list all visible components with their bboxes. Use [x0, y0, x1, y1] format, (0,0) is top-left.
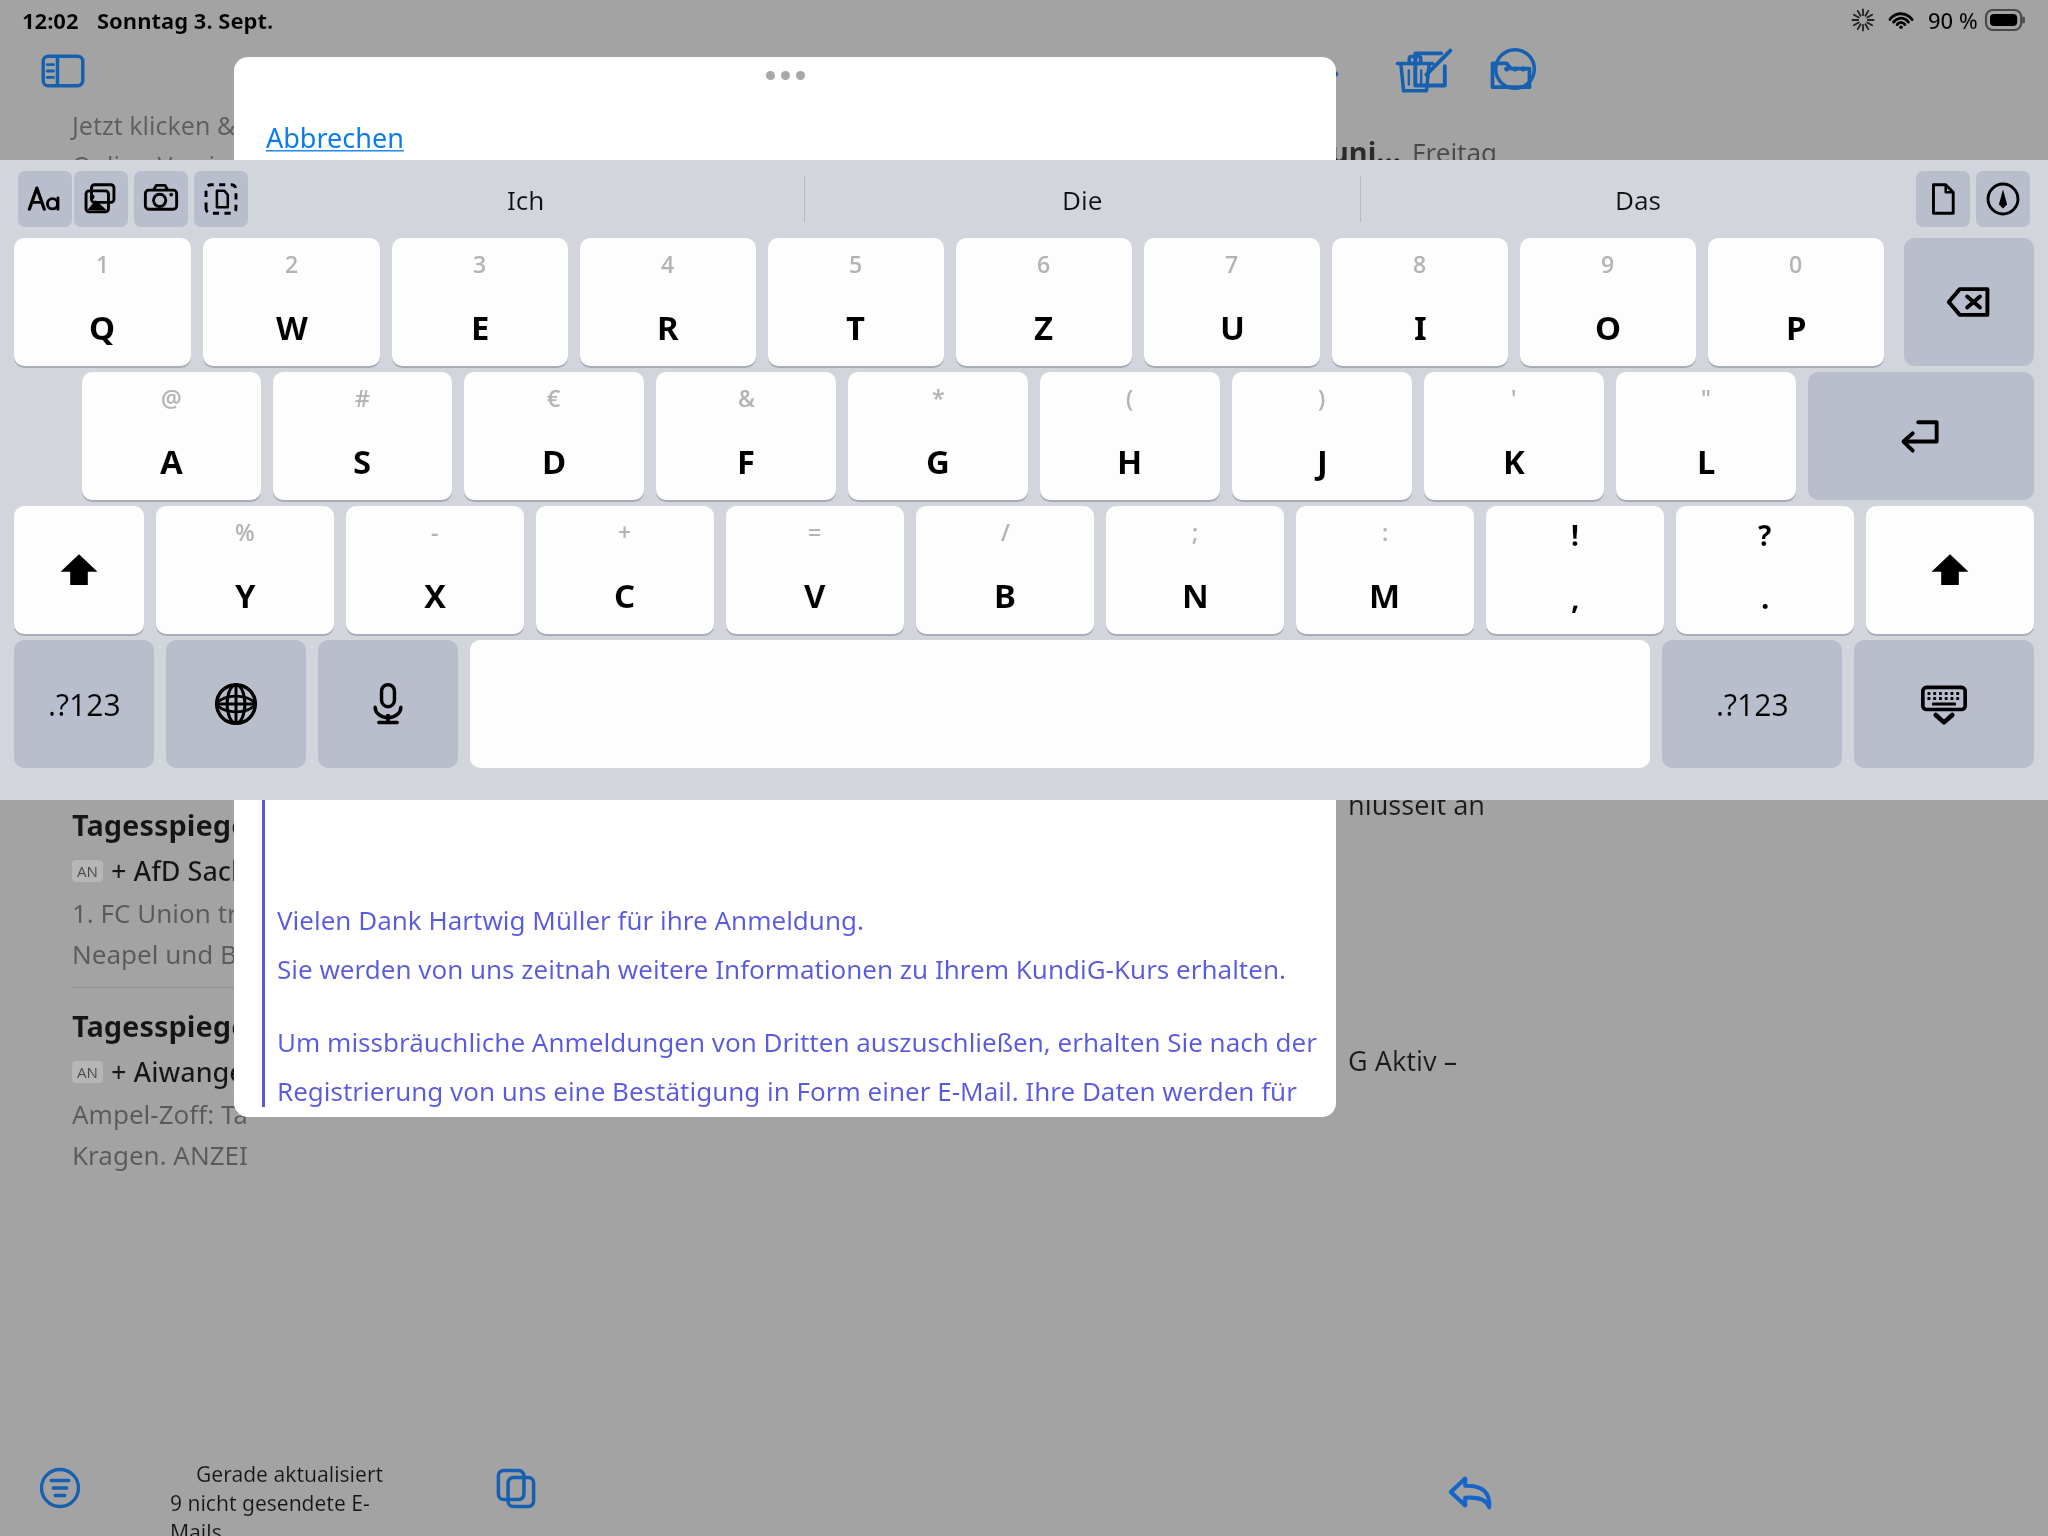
staticText: B: [994, 573, 1016, 618]
button[interactable]: 1: [14, 238, 191, 366]
button[interactable]: Aa: [18, 171, 72, 227]
staticText: hlüsselt an: [1348, 786, 1485, 823]
button[interactable]: 0: [1708, 238, 1884, 366]
staticText: 9: [1601, 248, 1615, 279]
button[interactable]: Das: [1361, 160, 1916, 238]
button[interactable]: Antworten: [1105, 52, 1149, 96]
button[interactable]: Neue E-Mail: [1408, 46, 1454, 92]
button[interactable]: Filter: [38, 1466, 82, 1510]
button[interactable]: 4: [580, 238, 756, 366]
button[interactable]: Weiterleiten: [1297, 52, 1341, 96]
button[interactable]: ': [1424, 372, 1604, 500]
button[interactable]: Anhang: [1916, 171, 1970, 227]
staticText: AN: [77, 861, 98, 881]
button[interactable]: Seitenleiste: [40, 48, 86, 94]
staticText: C: [614, 573, 636, 618]
button[interactable]: *: [848, 372, 1028, 500]
button[interactable]: 2: [203, 238, 380, 366]
button[interactable]: 3: [392, 238, 568, 366]
button[interactable]: .?123: [1662, 640, 1842, 768]
staticText: Medizinischen Hochschule Hannover <wordp…: [277, 757, 1110, 792]
staticText: D: [542, 439, 567, 484]
button[interactable]: Sprache: [166, 640, 306, 768]
staticText: Tagesspiege: [72, 1006, 249, 1045]
button[interactable]: ?: [1676, 506, 1854, 634]
staticText: F: [737, 439, 756, 484]
button[interactable]: :: [1296, 506, 1474, 634]
button[interactable]: Eingabe: [1808, 372, 2034, 500]
button[interactable]: Tastatur ausblenden: [1854, 640, 2034, 768]
button[interactable]: %: [156, 506, 334, 634]
staticText: V: [804, 573, 826, 618]
button[interactable]: Kamera: [134, 171, 188, 227]
button[interactable]: =: [726, 506, 904, 634]
staticText: G: [926, 439, 950, 484]
button[interactable]: Markierung: [1976, 171, 2030, 227]
button[interactable]: Allen antworten: [1201, 52, 1245, 96]
staticText: Y: [235, 573, 256, 618]
button[interactable]: Mehr: [1492, 46, 1538, 92]
button[interactable]: 5: [768, 238, 944, 366]
staticText: Sie werden von uns zeitnah weitere Infor…: [277, 951, 1286, 986]
button[interactable]: 7: [1144, 238, 1320, 366]
staticText: Z: [1034, 305, 1054, 350]
button[interactable]: !: [1486, 506, 1664, 634]
staticText: 5: [849, 248, 863, 279]
staticText: X: [424, 573, 447, 618]
button[interactable]: Entwürfe: [494, 1466, 538, 1510]
button[interactable]: Löschen: [1904, 238, 2034, 366]
button[interactable]: Antworten: [1446, 1468, 1494, 1516]
staticText: ): [1318, 382, 1326, 413]
button[interactable]: Die: [805, 160, 1360, 238]
button[interactable]: (: [1040, 372, 1220, 500]
staticText: (: [1126, 382, 1134, 413]
button[interactable]: Dokument scannen: [194, 171, 248, 227]
staticText: ': [1511, 382, 1517, 413]
staticText: M: [1369, 573, 1401, 618]
staticText: 90 %: [1928, 5, 1978, 35]
staticText: AN: [77, 1062, 98, 1082]
button[interactable]: Umschalt: [1866, 506, 2034, 634]
staticText: 6: [1037, 248, 1051, 279]
button[interactable]: Löschen: [1393, 52, 1437, 96]
staticText: 9 nicht gesendete E-Mails: [170, 1489, 410, 1536]
staticText: Online-Version: [72, 148, 246, 182]
button[interactable]: ): [1232, 372, 1412, 500]
button[interactable]: Abbrechen: [262, 115, 408, 160]
staticText: Um missbräuchliche Anmeldungen von Dritt…: [277, 1024, 1317, 1059]
button[interactable]: @: [82, 372, 261, 500]
staticText: Q: [89, 305, 116, 350]
button[interactable]: Umschalt: [14, 506, 144, 634]
staticText: Alle: [258, 52, 308, 89]
button[interactable]: .?123: [14, 640, 154, 768]
button[interactable]: Fotos: [74, 171, 128, 227]
button[interactable]: 6: [956, 238, 1132, 366]
staticText: Vielen Dank Hartwig Müller für ihre Anme…: [277, 902, 864, 937]
staticText: E: [471, 305, 490, 350]
button[interactable]: #: [273, 372, 452, 500]
staticText: Jetzt klicken &: [72, 108, 236, 142]
staticText: *: [932, 382, 945, 413]
button[interactable]: 8: [1332, 238, 1508, 366]
staticText: Tagesspiege: [72, 805, 249, 844]
button[interactable]: ;: [1106, 506, 1284, 634]
staticText: Bearbeiten: [420, 52, 560, 89]
staticText: 1: [96, 248, 110, 279]
button[interactable]: -: [346, 506, 524, 634]
button[interactable]: Ordner: [1489, 52, 1533, 96]
button[interactable]: Diktieren: [318, 640, 458, 768]
staticText: Abbrechen: [266, 119, 404, 156]
button[interactable]: &: [656, 372, 836, 500]
staticText: +: [618, 516, 632, 547]
button[interactable]: +: [536, 506, 714, 634]
button[interactable]: /: [916, 506, 1094, 634]
staticText: T: [846, 305, 866, 350]
button[interactable]: Ich: [248, 160, 804, 238]
button[interactable]: ": [1616, 372, 1796, 500]
button[interactable]: 9: [1520, 238, 1696, 366]
staticText: J: [1317, 439, 1328, 484]
staticText: Gerade aktualisiert: [196, 1460, 384, 1489]
button[interactable]: €: [464, 372, 644, 500]
staticText: &: [738, 382, 755, 413]
